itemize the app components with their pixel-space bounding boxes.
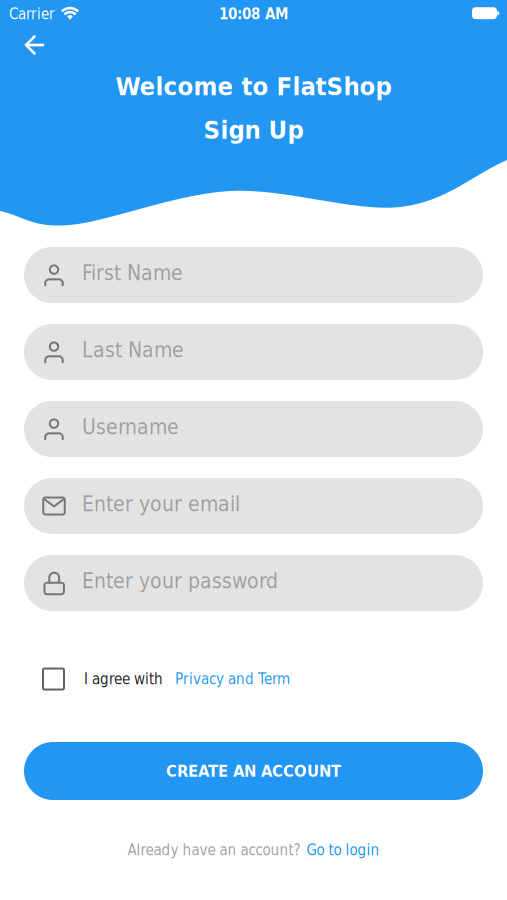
button[interactable]: Go to login (306, 841, 379, 859)
button[interactable]: Last Name (24, 324, 483, 380)
staticText: Privacy and Term (175, 670, 290, 688)
button[interactable]: CREATE AN ACCOUNT (24, 742, 483, 800)
staticText: Carrier (9, 5, 55, 23)
button[interactable]: Back (17, 27, 52, 62)
staticText: Enter your email (82, 492, 240, 516)
button[interactable]: Enter your password (24, 555, 483, 611)
staticText: Enter your password (82, 569, 278, 593)
staticText: I agree with (84, 670, 163, 688)
button[interactable]: Privacy and Term (175, 670, 290, 688)
staticText: 10:08 AM (219, 5, 288, 23)
staticText: CREATE AN ACCOUNT (166, 761, 341, 781)
staticText: First Name (82, 261, 183, 285)
button[interactable]: Enter your email (24, 478, 483, 534)
staticText: Last Name (82, 338, 184, 362)
staticText: Already have an account? (127, 841, 300, 859)
staticText: Go to login (306, 841, 379, 859)
staticText: Welcome to FlatShop (115, 72, 391, 101)
button[interactable]: First Name (24, 247, 483, 303)
staticText: Sign Up (203, 115, 303, 145)
button[interactable]: I agree with Privacy and Term (43, 668, 64, 689)
button[interactable]: Username (24, 401, 483, 457)
staticText: Username (82, 415, 179, 439)
